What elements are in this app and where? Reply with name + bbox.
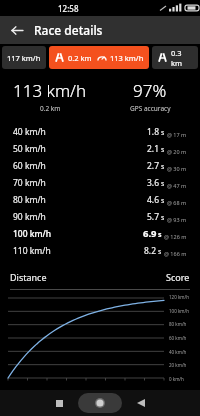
staticText: @ 166 m: [164, 250, 187, 257]
staticText: @ 126 m: [164, 233, 187, 240]
button[interactable]: 0.3 km: [152, 46, 198, 69]
staticText: 0.2 km: [40, 104, 61, 113]
staticText: Race details: [34, 22, 103, 38]
button[interactable]: 90 km/h: [0, 208, 200, 225]
staticText: 0.2 km: [68, 53, 92, 63]
staticText: 2.1: [147, 143, 160, 155]
button[interactable]: Back: [0, 16, 34, 44]
staticText: 3.6: [147, 177, 160, 189]
button[interactable]: Recents: [50, 394, 68, 412]
staticText: 117 km/h: [7, 53, 41, 63]
staticText: 120 km/h: [169, 294, 189, 300]
staticText: 97%: [133, 79, 167, 102]
staticText: s: [161, 213, 165, 223]
staticText: @ 93 m: [167, 216, 187, 223]
staticText: s: [158, 230, 162, 240]
staticText: 4.6: [147, 194, 160, 206]
staticText: 1.8: [147, 126, 160, 138]
staticText: 5.7: [147, 211, 160, 223]
staticText: @ 47 m: [167, 182, 187, 189]
staticText: 110 km/h: [13, 245, 51, 257]
staticText: 0 km/h: [169, 376, 184, 382]
button[interactable]: 100 km/h: [0, 225, 200, 242]
button[interactable]: 117 km/h: [2, 46, 46, 69]
button[interactable]: 70 km/h: [0, 174, 200, 191]
staticText: @ 30 m: [167, 165, 187, 172]
button[interactable]: 40 km/h: [0, 123, 200, 140]
staticText: 100 km/h: [169, 308, 189, 314]
staticText: 12:58: [58, 3, 79, 14]
staticText: @ 20 m: [167, 148, 187, 155]
button[interactable]: Home: [78, 393, 122, 413]
staticText: 100 km/h: [13, 228, 52, 240]
button[interactable]: 50 km/h: [0, 140, 200, 157]
staticText: 8.2: [144, 245, 157, 257]
button[interactable]: 80 km/h: [0, 191, 200, 208]
button[interactable]: 0.2 km: [49, 46, 149, 69]
staticText: @ 68 m: [167, 199, 187, 206]
staticText: 60 km/h: [169, 335, 187, 341]
staticText: s: [161, 162, 165, 172]
staticText: s: [161, 179, 165, 189]
staticText: 113 km/h: [110, 53, 144, 63]
staticText: s: [161, 196, 165, 206]
staticText: s: [161, 128, 165, 138]
staticText: s: [158, 247, 162, 257]
button[interactable]: Back: [132, 394, 150, 412]
staticText: 0.3 km: [171, 48, 193, 68]
staticText: s: [161, 145, 165, 155]
staticText: 20 km/h: [169, 362, 187, 368]
staticText: 50 km/h: [13, 143, 46, 155]
staticText: 113 km/h: [13, 79, 87, 102]
staticText: 40 km/h: [169, 349, 187, 355]
staticText: 80 km/h: [169, 321, 187, 327]
button[interactable]: 60 km/h: [0, 157, 200, 174]
staticText: 6.9: [143, 227, 157, 240]
staticText: 2.7: [147, 160, 160, 172]
staticText: 40 km/h: [13, 126, 46, 138]
staticText: 80 km/h: [13, 194, 46, 206]
staticText: Score: [166, 271, 190, 283]
staticText: Distance: [10, 271, 47, 283]
button[interactable]: 110 km/h: [0, 242, 200, 259]
staticText: 70 km/h: [13, 177, 46, 189]
staticText: @ 17 m: [167, 131, 187, 138]
staticText: 60 km/h: [13, 160, 46, 172]
staticText: GPS accuracy: [130, 104, 171, 113]
staticText: 90 km/h: [13, 211, 46, 223]
